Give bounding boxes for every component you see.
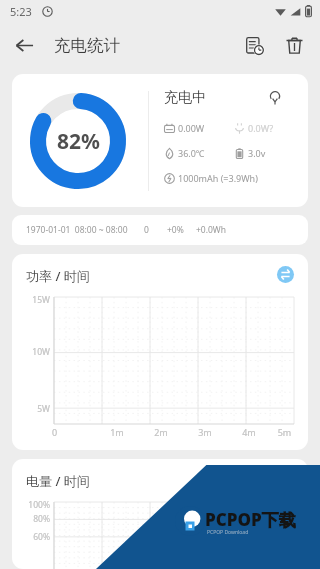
staticText: 10W [24, 346, 50, 358]
staticText: 功率 / 时间 [26, 267, 90, 285]
staticText: 60% [24, 531, 50, 543]
button[interactable]: 82% [12, 74, 308, 207]
staticText: 1m [95, 426, 139, 438]
button[interactable]: Tip [264, 87, 286, 109]
staticText: +0.0Wh [196, 224, 227, 236]
staticText: 充电统计 [54, 35, 120, 56]
staticText: 4m [227, 426, 271, 438]
staticText: 82% [57, 127, 100, 156]
staticText: 充电中 [164, 89, 206, 107]
staticText: 1970-01-01 08:00 ~ 08:00 [26, 224, 128, 236]
button[interactable]: Back [6, 27, 42, 63]
staticText: 3m [183, 426, 227, 438]
staticText: 0 [144, 224, 149, 236]
staticText: PCPOP Download [207, 529, 249, 536]
staticText: 5:23 [10, 4, 32, 19]
staticText: 2m [139, 426, 183, 438]
button[interactable]: 1970-01-01 08:00 ~ 08:00 [12, 215, 308, 245]
button[interactable]: Switch chart [272, 261, 298, 287]
staticText: 1000mAh (=3.9Wh) [178, 172, 258, 184]
staticText: 电量 / 时间 [26, 472, 90, 490]
staticText: 0.0W? [248, 122, 274, 134]
staticText: 100% [24, 499, 50, 511]
staticText: PCPOP下载 [205, 508, 296, 531]
staticText: 0 [52, 426, 95, 438]
button[interactable]: Delete [274, 25, 314, 65]
staticText: 15W [24, 294, 50, 306]
button[interactable]: History [234, 25, 274, 65]
staticText: 5W [24, 403, 50, 415]
staticText: 80% [24, 513, 50, 525]
staticText: +0% [167, 224, 184, 236]
staticText: 5m [271, 426, 298, 438]
staticText: 0.00W [178, 122, 205, 134]
staticText: 36.0℃ [178, 147, 205, 159]
staticText: 3.0v [248, 147, 266, 159]
